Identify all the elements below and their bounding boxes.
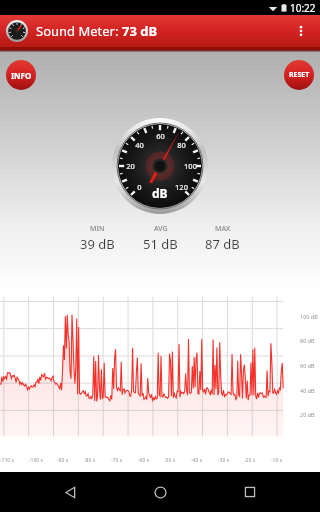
staticText: MIN xyxy=(90,224,105,234)
staticText: 0 xyxy=(137,182,142,192)
staticText: -70 s xyxy=(111,457,123,464)
button[interactable]: Recent apps xyxy=(230,472,270,512)
staticText: 80 dB xyxy=(300,337,315,344)
staticText: -20 s xyxy=(244,457,256,464)
staticText: -40 s xyxy=(191,457,203,464)
staticText: 20 dB xyxy=(300,411,315,418)
staticText: INFO xyxy=(11,70,32,81)
staticText: Sound Meter: xyxy=(36,22,122,40)
button[interactable]: INFO xyxy=(6,60,36,90)
staticText: 100 dB xyxy=(300,313,318,320)
staticText: dB xyxy=(152,185,168,201)
staticText: -50 s xyxy=(164,457,176,464)
button[interactable]: Back xyxy=(50,472,90,512)
staticText: 40 dB xyxy=(300,387,315,394)
staticText: 39 dB xyxy=(80,235,115,253)
staticText: RESET xyxy=(289,70,310,80)
staticText: -30 s xyxy=(218,457,230,464)
button[interactable]: Home xyxy=(140,472,180,512)
staticText: 100 xyxy=(184,161,197,171)
button[interactable]: More options xyxy=(288,18,314,44)
staticText: 60 dB xyxy=(300,362,315,369)
staticText: 73 dB xyxy=(122,22,158,40)
staticText: 51 dB xyxy=(143,235,178,253)
staticText: 40 xyxy=(135,140,144,150)
staticText: -90 s xyxy=(57,457,69,464)
staticText: 10:22 xyxy=(290,1,316,15)
staticText: -110 s xyxy=(0,457,14,464)
staticText: -60 s xyxy=(138,457,150,464)
staticText: MAX xyxy=(215,224,231,234)
staticText: 60 xyxy=(156,131,165,141)
staticText: AVG xyxy=(154,224,168,234)
staticText: -80 s xyxy=(84,457,96,464)
staticText: 87 dB xyxy=(205,235,240,253)
staticText: -10 s xyxy=(271,457,283,464)
staticText: 80 xyxy=(177,140,186,150)
button[interactable]: RESET xyxy=(284,60,314,90)
staticText: -100 s xyxy=(29,457,43,464)
staticText: 120 xyxy=(175,182,188,192)
staticText: 20 xyxy=(126,161,135,171)
